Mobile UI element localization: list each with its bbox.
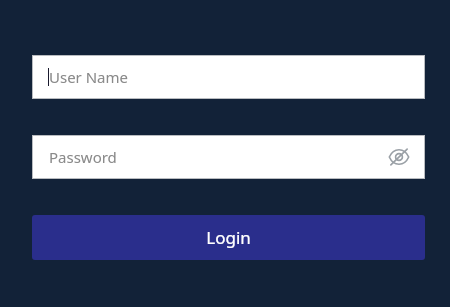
button[interactable]: Login — [32, 215, 425, 260]
staticText: User Name — [49, 67, 129, 87]
staticText: Login — [206, 226, 251, 249]
button[interactable]: Password — [32, 135, 425, 179]
staticText: Password — [49, 147, 117, 167]
button[interactable]: User Name — [32, 55, 425, 99]
button[interactable]: Show password — [385, 143, 413, 171]
